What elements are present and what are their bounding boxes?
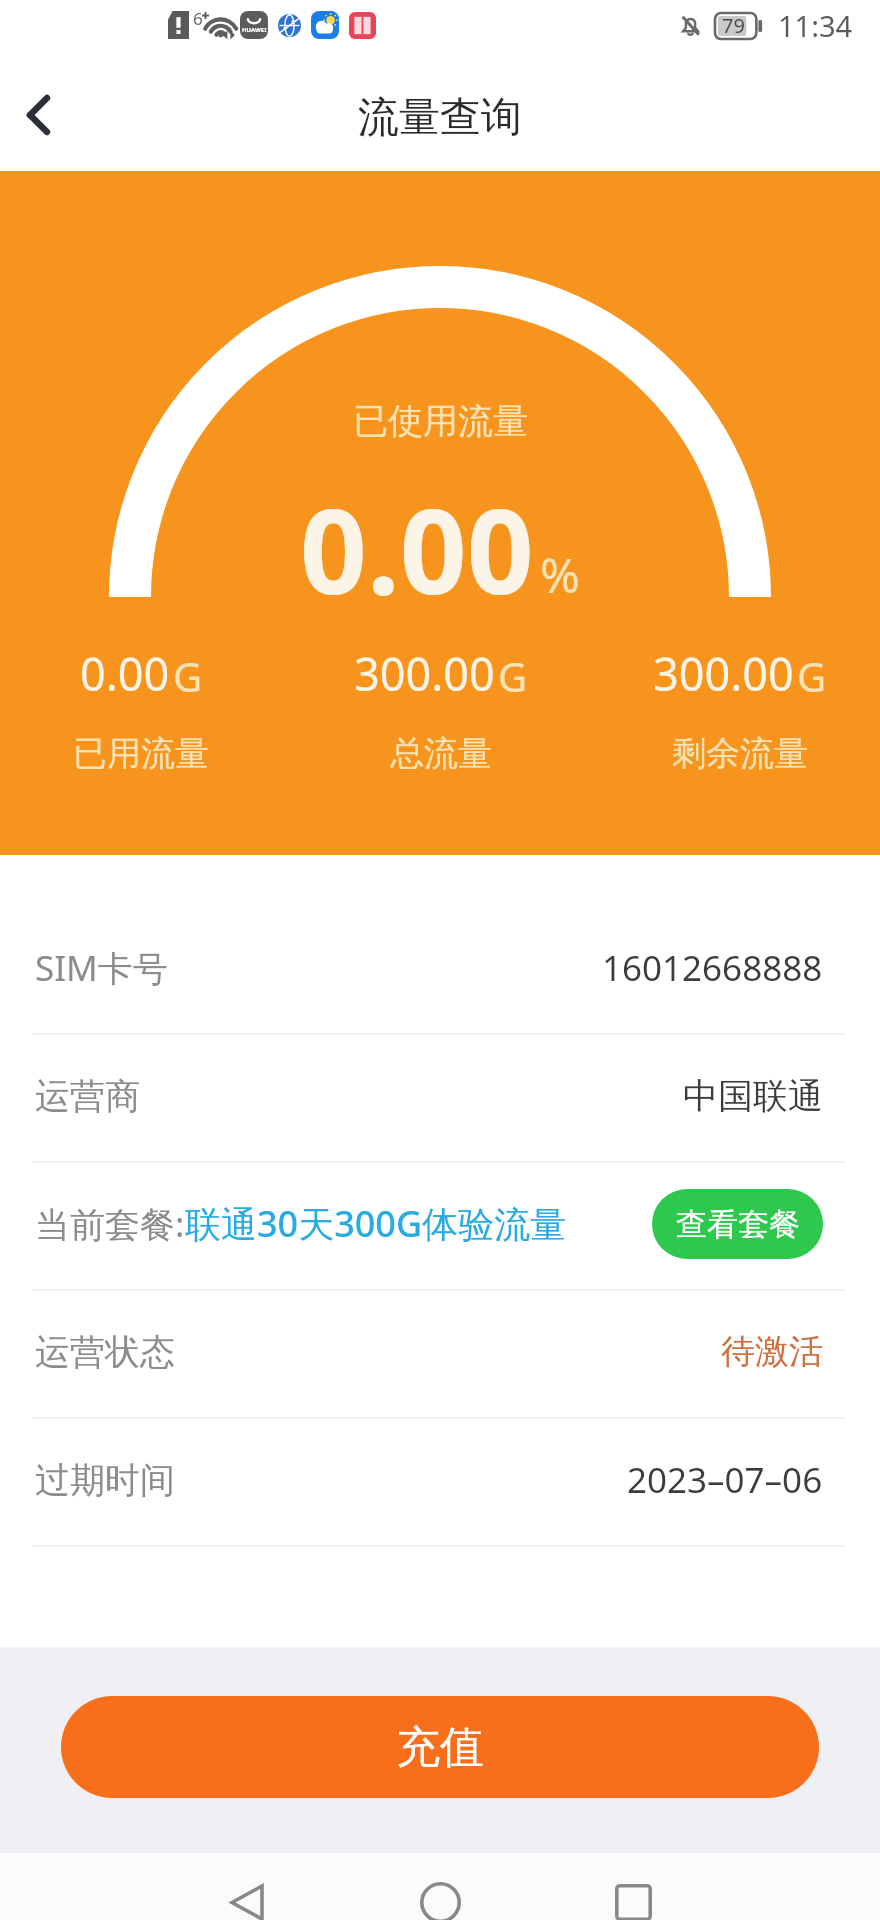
- staticText: 联通30天300G体验流量: [185, 1199, 567, 1248]
- button[interactable]: 充值: [61, 1696, 819, 1798]
- staticText: 11:34: [778, 6, 853, 45]
- staticText: 运营状态: [35, 1330, 175, 1374]
- staticText: 300.00: [653, 643, 794, 704]
- staticText: 中国联通: [683, 1074, 823, 1118]
- button[interactable]: 当前套餐:: [0, 1163, 880, 1289]
- staticText: HUAWEI: [242, 26, 267, 34]
- button[interactable]: 过期时间: [0, 1419, 880, 1545]
- button[interactable]: Home: [391, 1879, 489, 1920]
- staticText: G: [498, 649, 528, 703]
- staticText: G: [797, 649, 827, 703]
- button[interactable]: 运营商: [0, 1035, 880, 1161]
- staticText: G: [173, 649, 203, 703]
- staticText: 运营商: [35, 1074, 140, 1118]
- staticText: 6: [193, 7, 203, 30]
- staticText: 当前套餐:: [35, 1200, 185, 1248]
- staticText: 待激活: [721, 1330, 823, 1373]
- staticText: SIM卡号: [35, 944, 168, 992]
- staticText: 流量查询: [358, 92, 522, 144]
- staticText: 已用流量: [73, 732, 209, 775]
- staticText: 0.00: [80, 643, 170, 704]
- staticText: 0.00: [300, 469, 534, 628]
- staticText: 16012668888: [602, 944, 823, 992]
- staticText: 剩余流量: [672, 732, 808, 775]
- staticText: 充值: [396, 1720, 484, 1775]
- staticText: 查看套餐: [676, 1205, 800, 1244]
- staticText: 2023–07–06: [627, 1456, 823, 1504]
- staticText: 79: [722, 12, 745, 38]
- button[interactable]: 运营状态: [0, 1291, 880, 1417]
- button[interactable]: Back: [198, 1879, 296, 1920]
- button[interactable]: 查看套餐: [652, 1189, 823, 1259]
- staticText: 过期时间: [35, 1458, 175, 1502]
- button[interactable]: SIM卡号: [0, 907, 880, 1033]
- staticText: 已使用流量: [353, 399, 528, 443]
- button[interactable]: Back: [0, 58, 76, 171]
- staticText: 300.00: [354, 643, 495, 704]
- staticText: %: [540, 542, 580, 607]
- staticText: 总流量: [390, 732, 492, 775]
- button[interactable]: Recents: [584, 1879, 682, 1920]
